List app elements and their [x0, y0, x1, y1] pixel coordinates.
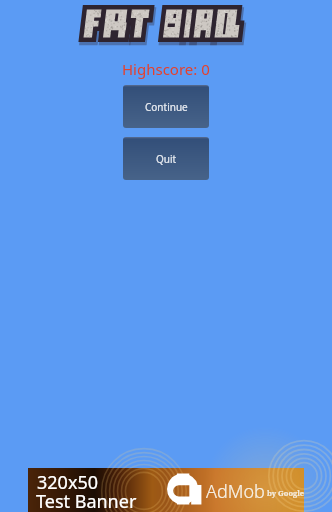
staticText: AdMob [206, 479, 265, 504]
staticText: Test Banner [36, 489, 137, 512]
staticText: Continue [145, 100, 188, 114]
button[interactable]: Quit [123, 137, 209, 180]
staticText: Highscore: 0 [122, 59, 210, 79]
staticText: Quit [156, 152, 177, 166]
button[interactable]: 320x50 [28, 468, 304, 512]
staticText: by Google [267, 488, 305, 498]
button[interactable]: Continue [123, 85, 209, 128]
staticText: 320x50 [37, 470, 99, 495]
